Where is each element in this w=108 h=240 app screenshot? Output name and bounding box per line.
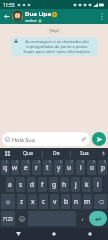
button[interactable]: Recent apps (72, 228, 108, 240)
staticText: 5 (49, 160, 51, 164)
button[interactable]: 6 (54, 160, 63, 175)
staticText: 0 (104, 160, 106, 164)
button[interactable]: 5 (43, 160, 52, 175)
staticText: u (67, 163, 72, 172)
button[interactable]: Back (1, 11, 12, 22)
button[interactable]: Enter (89, 211, 107, 226)
staticText: v (53, 197, 57, 206)
staticText: e (24, 163, 28, 172)
staticText: 3 (27, 160, 29, 164)
staticText: As mensagens e as chamadas são criptogra… (20, 39, 94, 54)
button[interactable]: Sua (71, 148, 98, 159)
staticText: Qua (23, 150, 33, 157)
button[interactable]: g (49, 177, 58, 192)
staticText: Hola Sua (12, 136, 35, 143)
staticText: o (90, 163, 94, 172)
button[interactable]: Home (36, 228, 72, 240)
button[interactable]: f (38, 177, 47, 192)
button[interactable]: m (83, 194, 92, 209)
staticText: x (31, 197, 35, 206)
button[interactable]: l (93, 177, 102, 192)
button[interactable]: a (6, 177, 14, 192)
button[interactable]: ?123 (1, 211, 15, 226)
staticText: ?123 (3, 216, 13, 222)
staticText: q (3, 163, 7, 172)
staticText: b (64, 197, 68, 206)
button[interactable]: b (61, 194, 70, 209)
button[interactable]: De (43, 148, 70, 159)
button[interactable]: 0 (98, 160, 107, 175)
button[interactable]: Voice input (98, 148, 108, 159)
staticText: r (35, 163, 38, 172)
button[interactable]: Send (92, 132, 106, 146)
button[interactable]: More options (96, 11, 107, 22)
button[interactable]: x (28, 194, 37, 209)
staticText: n (74, 197, 79, 206)
button[interactable]: 2 (11, 160, 19, 175)
staticText: 2 (16, 160, 18, 164)
staticText: Hoje (50, 28, 59, 33)
staticText: j (75, 180, 77, 189)
button[interactable]: z (17, 194, 26, 209)
button[interactable]: Hola Sua (2, 132, 90, 146)
staticText: z (20, 197, 24, 206)
staticText: , (82, 215, 84, 222)
button[interactable]: 8 (76, 160, 85, 175)
staticText: online (25, 18, 37, 23)
button[interactable]: Toolbar (0, 148, 14, 159)
button[interactable]: c (39, 194, 48, 209)
button[interactable]: h (60, 177, 69, 192)
staticText: d (30, 180, 34, 189)
button[interactable]: Back (0, 228, 36, 240)
button[interactable]: Emoji (16, 210, 27, 227)
staticText: 6 (60, 160, 62, 164)
button[interactable]: Dua Lipa (25, 10, 96, 23)
staticText: p (101, 163, 105, 172)
staticText: y (57, 163, 61, 172)
button[interactable]: s (16, 177, 25, 192)
staticText: 9 (93, 160, 95, 164)
staticText: De (53, 150, 60, 157)
staticText: i (80, 163, 82, 172)
staticText: h (62, 180, 67, 189)
staticText: 1 (6, 160, 8, 164)
button[interactable]: n (72, 194, 81, 209)
button[interactable]: Profile photo (12, 11, 23, 22)
button[interactable]: v (50, 194, 59, 209)
staticText: t (46, 163, 49, 172)
staticText: g (52, 180, 56, 189)
button[interactable]: 3 (21, 160, 30, 175)
staticText: m (84, 197, 91, 206)
button[interactable]: 4 (32, 160, 41, 175)
button[interactable]: k (82, 177, 91, 192)
staticText: 11:55 (3, 2, 15, 8)
staticText: c (42, 197, 46, 206)
staticText: f (41, 180, 44, 189)
staticText: 8 (82, 160, 84, 164)
staticText: 7 (71, 160, 73, 164)
button[interactable]: 9 (87, 160, 96, 175)
button[interactable]: Comma (77, 210, 88, 227)
staticText: l (97, 180, 99, 189)
button[interactable]: 7 (65, 160, 74, 175)
staticText: s (19, 180, 23, 189)
button[interactable]: 1 (1, 160, 9, 175)
button[interactable]: Shift (1, 194, 15, 209)
button[interactable]: Attach (79, 135, 87, 143)
button[interactable]: d (27, 177, 36, 192)
staticText: w (12, 163, 18, 172)
staticText: Dua Lipa (25, 10, 51, 18)
staticText: a (8, 180, 12, 189)
staticText: k (85, 180, 89, 189)
staticText: 4 (38, 160, 40, 164)
button[interactable]: j (71, 177, 80, 192)
button[interactable]: Qua (14, 148, 42, 159)
staticText: Sua (80, 150, 89, 157)
button[interactable]: Backspace (94, 194, 107, 209)
